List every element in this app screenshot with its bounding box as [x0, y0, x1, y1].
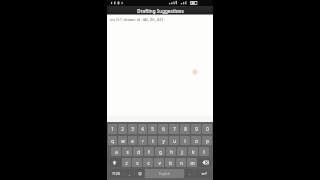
- button[interactable]: Shift: [108, 158, 121, 167]
- staticText: g: [159, 149, 162, 155]
- button[interactable]: .: [185, 169, 194, 178]
- staticText: .: [189, 171, 190, 176]
- staticText: k: [192, 149, 195, 155]
- button[interactable]: l: [199, 147, 209, 156]
- button[interactable]: x: [132, 158, 142, 167]
- staticText: m: [190, 160, 195, 166]
- button[interactable]: e: [128, 136, 137, 145]
- staticText: b: [169, 160, 172, 166]
- staticText: j: [181, 149, 183, 155]
- staticText: i: [184, 138, 186, 144]
- staticText: 3: [131, 126, 134, 132]
- button[interactable]: 7: [169, 124, 179, 134]
- staticText: e: [131, 138, 134, 144]
- button[interactable]: 4: [138, 124, 147, 134]
- button[interactable]: a: [111, 147, 121, 156]
- staticText: 1: [111, 126, 114, 132]
- button[interactable]: 6: [158, 124, 168, 134]
- button[interactable]: 😊: [135, 169, 144, 178]
- button[interactable]: q: [108, 136, 117, 145]
- staticText: y: [162, 138, 165, 144]
- staticText: v: [158, 160, 161, 166]
- button[interactable]: g: [155, 147, 165, 156]
- button[interactable]: b: [165, 158, 175, 167]
- staticText: h: [170, 149, 173, 155]
- button[interactable]: z: [122, 158, 131, 167]
- staticText: n: [180, 160, 183, 166]
- button[interactable]: 0: [202, 124, 212, 134]
- button[interactable]: d: [133, 147, 143, 156]
- staticText: English: [159, 172, 170, 176]
- button[interactable]: 9: [191, 124, 201, 134]
- button[interactable]: j: [177, 147, 187, 156]
- button[interactable]: k: [188, 147, 198, 156]
- button[interactable]: y: [158, 136, 168, 145]
- staticText: 9: [195, 126, 198, 132]
- staticText: w: [121, 138, 125, 144]
- staticText: on 0:1 drawn nl. (Al, 26, 42): [110, 17, 163, 23]
- staticText: l: [203, 149, 205, 155]
- staticText: 5: [151, 126, 154, 132]
- staticText: Drafting Suggestions: [137, 8, 184, 14]
- staticText: d: [137, 149, 140, 155]
- staticText: 4: [141, 126, 144, 132]
- button[interactable]: c: [143, 158, 153, 167]
- button[interactable]: Backspace: [198, 158, 212, 167]
- staticText: q: [111, 138, 114, 144]
- staticText: 7: [173, 126, 176, 132]
- staticText: p: [206, 138, 209, 144]
- staticText: 8: [184, 126, 187, 132]
- staticText: t: [152, 138, 154, 144]
- staticText: z: [125, 160, 128, 166]
- staticText: 0: [206, 126, 209, 132]
- button[interactable]: 1: [108, 124, 117, 134]
- staticText: r: [142, 138, 144, 144]
- button[interactable]: ,: [125, 169, 134, 178]
- button[interactable]: 3: [128, 124, 137, 134]
- staticText: 2: [121, 126, 124, 132]
- button[interactable]: o: [191, 136, 201, 145]
- staticText: f: [148, 149, 150, 155]
- staticText: o: [195, 138, 198, 144]
- staticText: s: [126, 149, 129, 155]
- button[interactable]: n: [176, 158, 186, 167]
- button[interactable]: r: [138, 136, 147, 145]
- button[interactable]: Enter: [195, 169, 212, 178]
- button[interactable]: t: [148, 136, 157, 145]
- button[interactable]: 8: [180, 124, 190, 134]
- button[interactable]: i: [180, 136, 190, 145]
- staticText: ,: [129, 171, 130, 176]
- button[interactable]: f: [144, 147, 154, 156]
- button[interactable]: u: [169, 136, 179, 145]
- button[interactable]: w: [118, 136, 127, 145]
- button[interactable]: Space: [145, 169, 184, 178]
- button[interactable]: 5: [148, 124, 157, 134]
- button[interactable]: p: [202, 136, 212, 145]
- button[interactable]: 2: [118, 124, 127, 134]
- button[interactable]: s: [122, 147, 132, 156]
- button[interactable]: v: [154, 158, 164, 167]
- staticText: c: [147, 160, 150, 166]
- staticText: a: [115, 149, 118, 155]
- staticText: x: [136, 160, 139, 166]
- button[interactable]: h: [166, 147, 176, 156]
- staticText: 6: [162, 126, 165, 132]
- button[interactable]: Drafting Suggestions: [107, 6, 213, 15]
- button[interactable]: m: [187, 158, 197, 167]
- button[interactable]: ?123: [108, 169, 124, 178]
- staticText: 😊: [138, 172, 142, 176]
- staticText: u: [173, 138, 176, 144]
- staticText: ?123: [112, 171, 120, 176]
